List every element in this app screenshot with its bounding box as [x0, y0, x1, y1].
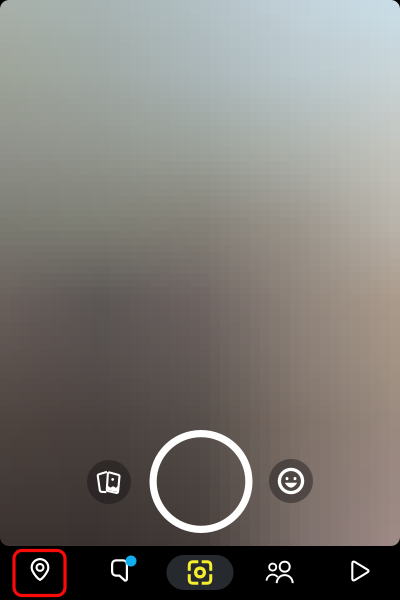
- button[interactable]: Capture: [149, 430, 252, 533]
- button[interactable]: Spotlight: [320, 546, 400, 600]
- button[interactable]: Chat: [80, 546, 160, 600]
- button[interactable]: Stories: [240, 546, 320, 600]
- button[interactable]: Map: [0, 546, 80, 600]
- button[interactable]: Camera: [160, 546, 240, 600]
- button[interactable]: Lenses: [269, 459, 313, 503]
- button[interactable]: Memories: [87, 460, 131, 504]
